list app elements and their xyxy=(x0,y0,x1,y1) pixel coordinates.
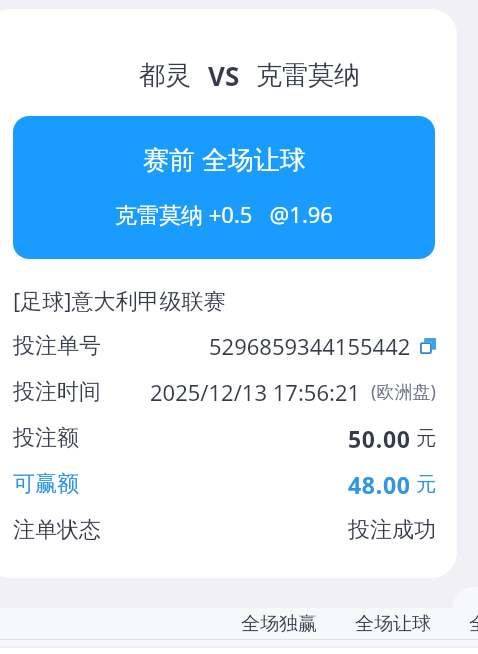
button[interactable]: 全场大小 xyxy=(463,608,478,639)
staticText: 可赢额 xyxy=(13,470,79,498)
staticText: VS xyxy=(208,58,240,92)
button[interactable]: 投注单号 xyxy=(0,328,478,364)
staticText: 投注成功 xyxy=(348,516,436,544)
button[interactable]: 全场让球 xyxy=(349,608,437,639)
button[interactable]: Copy xyxy=(420,338,436,354)
button[interactable]: 可赢额 xyxy=(0,466,478,502)
staticText: 全场大小 xyxy=(469,612,478,636)
staticText: 50.00 xyxy=(348,423,411,454)
staticText: 投注单号 xyxy=(13,332,101,360)
button[interactable]: 注单状态 xyxy=(0,512,478,548)
staticText: 投注额 xyxy=(13,424,79,452)
staticText: 注单状态 xyxy=(13,516,101,544)
staticText: 48.00 xyxy=(348,469,411,500)
staticText: 5296859344155442 xyxy=(209,331,411,361)
staticText: 全场独赢 xyxy=(241,612,317,636)
staticText: 全场让球 xyxy=(355,612,431,636)
staticText: 元 xyxy=(416,472,436,497)
button[interactable]: 赛前 全场让球 xyxy=(13,116,435,259)
staticText: (欧洲盘) xyxy=(371,379,436,404)
staticText: 赛前 全场让球 xyxy=(143,141,306,177)
button[interactable]: 全场独赢 xyxy=(235,608,323,639)
staticText: 都灵 xyxy=(139,59,191,92)
button[interactable]: 投注时间 xyxy=(0,374,478,410)
button[interactable]: [足球]意大利甲级联赛 xyxy=(0,282,478,318)
button[interactable]: 投注额 xyxy=(0,420,478,456)
staticText: 克雷莫纳 +0.5 @1.96 xyxy=(115,199,333,229)
staticText: [足球]意大利甲级联赛 xyxy=(13,285,226,315)
staticText: 克雷莫纳 xyxy=(256,59,360,92)
staticText: 2025/12/13 17:56:21 xyxy=(150,377,361,407)
staticText: 元 xyxy=(416,426,436,451)
staticText: 投注时间 xyxy=(13,378,101,406)
